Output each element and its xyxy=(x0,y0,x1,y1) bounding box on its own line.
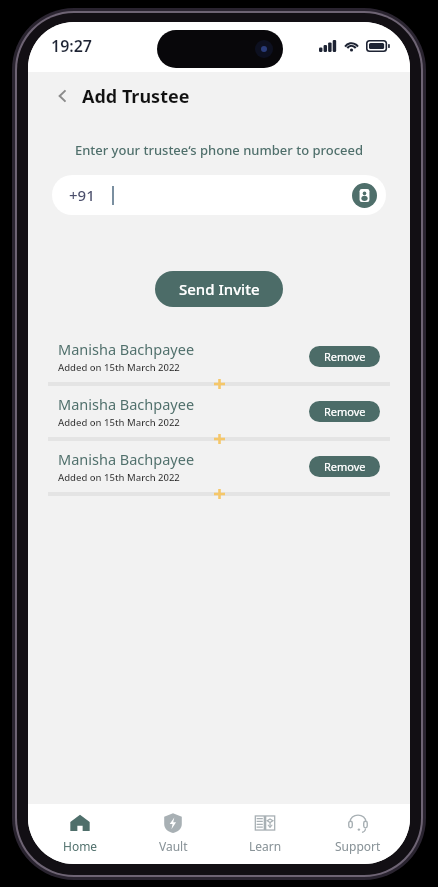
button[interactable]: Pick contact xyxy=(352,183,377,208)
staticText: Remove xyxy=(324,404,366,419)
button[interactable]: +91 xyxy=(52,175,386,215)
staticText: Send Invite xyxy=(179,279,260,299)
staticText: Added on 15th March 2022 xyxy=(58,361,180,374)
button[interactable]: Remove xyxy=(309,456,380,477)
button[interactable]: Home xyxy=(39,812,121,854)
staticText: Manisha Bachpayee xyxy=(58,394,195,414)
staticText: Added on 15th March 2022 xyxy=(58,416,180,429)
button[interactable]: Back xyxy=(50,83,76,109)
staticText: 19:27 xyxy=(51,35,93,57)
staticText: Vault xyxy=(159,838,188,854)
button[interactable]: Support xyxy=(317,812,399,854)
button[interactable]: Vault xyxy=(132,812,214,854)
staticText: Manisha Bachpayee xyxy=(58,339,195,359)
staticText: Home xyxy=(63,838,98,854)
staticText: Remove xyxy=(324,349,366,364)
button[interactable]: Remove xyxy=(309,401,380,422)
staticText: +91 xyxy=(69,185,95,205)
staticText: Add Trustee xyxy=(82,84,190,109)
staticText: Remove xyxy=(324,459,366,474)
staticText: Learn xyxy=(249,838,282,854)
button[interactable]: Send Invite xyxy=(155,271,283,307)
button[interactable]: Remove xyxy=(309,346,380,367)
staticText: Enter your trustee‘s phone number to pro… xyxy=(28,141,410,159)
staticText: Added on 15th March 2022 xyxy=(58,471,180,484)
staticText: Manisha Bachpayee xyxy=(58,449,195,469)
button[interactable]: Learn xyxy=(224,812,306,854)
staticText: Support xyxy=(335,838,381,854)
